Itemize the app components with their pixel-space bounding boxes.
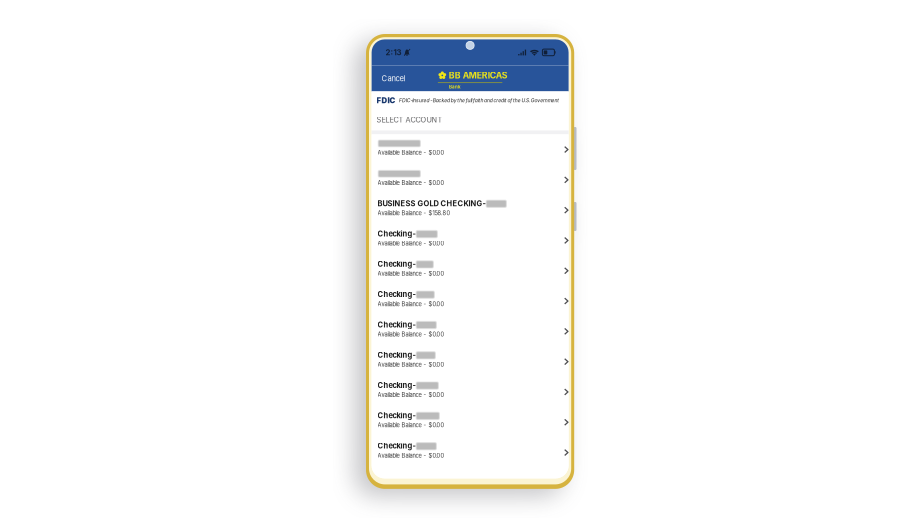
staticText: Available Balance - $0.00 (378, 301, 445, 308)
staticText: Available Balance - $0.00 (378, 392, 445, 398)
staticText: BB AMERICAS (449, 70, 508, 81)
button[interactable]: Checking- (372, 316, 569, 346)
staticText: Cancel (382, 74, 406, 83)
staticText: Bank (449, 84, 461, 90)
staticText: Available Balance - $0.00 (378, 331, 445, 338)
button[interactable]: Checking- (372, 256, 569, 286)
staticText: Available Balance - $0.00 (378, 361, 445, 368)
staticText: Available Balance - $0.00 (378, 240, 445, 247)
button[interactable]: Checking- (372, 377, 569, 407)
staticText: Checking- (378, 320, 416, 329)
button[interactable]: Available Balance - $0.00 (372, 165, 569, 195)
staticText: Checking- (378, 350, 416, 359)
staticText: Available Balance - $158.80 (378, 210, 451, 217)
button[interactable]: Checking- (372, 225, 569, 256)
staticText: Available Balance - $0.00 (378, 179, 445, 186)
staticText: 2:13 (386, 48, 402, 57)
staticText: Checking- (378, 441, 416, 450)
button[interactable]: Checking- (372, 286, 569, 316)
staticText: Available Balance - $0.00 (378, 422, 445, 429)
staticText: Checking- (378, 260, 416, 269)
staticText: Available Balance - $0.00 (378, 149, 445, 156)
button[interactable]: Checking- (372, 437, 569, 468)
staticText: Checking- (378, 381, 416, 390)
staticText: FDIC (377, 96, 396, 105)
staticText: Checking- (378, 411, 416, 420)
staticText: FDIC-Insured - Backed by the full faith … (399, 97, 559, 103)
button[interactable]: Checking- (372, 346, 569, 377)
staticText: Available Balance - $0.00 (378, 452, 445, 459)
button[interactable]: Available Balance - $0.00 (372, 134, 569, 165)
staticText: BUSINESS GOLD CHECKING- (378, 199, 486, 208)
button[interactable]: Checking- (372, 407, 569, 437)
staticText: SELECT ACCOUNT (377, 115, 443, 124)
button[interactable]: Cancel (377, 69, 411, 88)
staticText: Checking- (378, 290, 416, 299)
button[interactable]: BUSINESS GOLD CHECKING- (372, 195, 569, 225)
staticText: Checking- (378, 229, 416, 238)
staticText: Available Balance - $0.00 (378, 270, 445, 277)
